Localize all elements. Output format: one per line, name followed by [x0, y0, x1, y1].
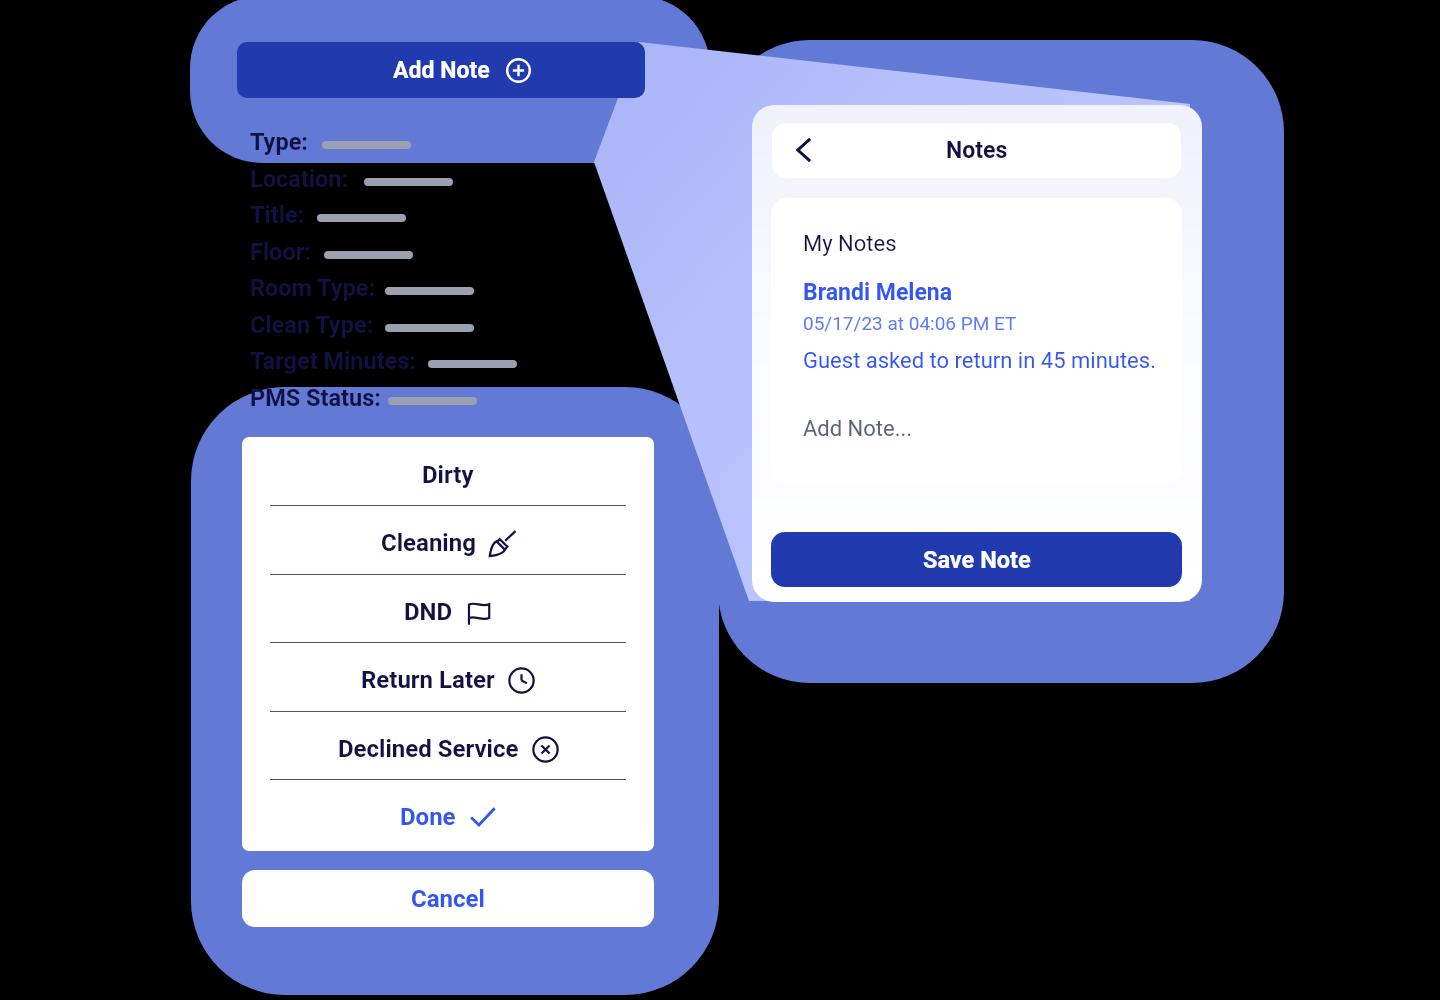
button[interactable]: Back	[781, 127, 827, 173]
staticText: Save Note	[923, 546, 1031, 574]
staticText: Target Minutes:	[250, 347, 417, 375]
staticText: Title:	[250, 201, 305, 229]
staticText: Dirty	[422, 461, 474, 489]
button[interactable]: Notes	[772, 123, 1181, 178]
button[interactable]: Done	[242, 779, 654, 847]
button[interactable]: DND	[242, 574, 654, 642]
button[interactable]: Declined Service	[242, 711, 654, 779]
button[interactable]: Dirty	[242, 437, 654, 505]
button[interactable]: Save Note	[771, 532, 1182, 587]
staticText: Notes	[946, 137, 1008, 164]
button[interactable]: Return Later	[242, 642, 654, 710]
staticText: Room Type:	[250, 274, 376, 302]
staticText: Location:	[250, 165, 349, 193]
staticText: Brandi Melena	[803, 279, 953, 306]
staticText: Add Note	[393, 57, 490, 84]
staticText: Cancel	[411, 885, 485, 913]
staticText: Floor:	[250, 238, 311, 266]
button[interactable]: Cancel	[242, 870, 654, 927]
staticText: Cleaning	[381, 529, 476, 557]
staticText: Done	[400, 803, 456, 831]
staticText: Declined Service	[338, 735, 519, 763]
staticText: My Notes	[803, 231, 897, 257]
staticText: Clean Type:	[250, 311, 374, 339]
button[interactable]: Cleaning	[242, 505, 654, 573]
staticText: Guest asked to return in 45 minutes.	[803, 348, 1156, 374]
staticText: PMS Status:	[250, 384, 381, 412]
staticText: Return Later	[361, 666, 495, 694]
staticText: Add Note...	[803, 416, 913, 442]
staticText: 05/17/23 at 04:06 PM ET	[803, 312, 1017, 334]
staticText: DND	[404, 598, 453, 626]
button[interactable]: Add Note	[237, 42, 645, 98]
staticText: Type:	[250, 128, 308, 156]
